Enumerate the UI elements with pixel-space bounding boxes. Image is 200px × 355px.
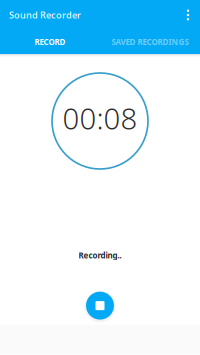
button[interactable]: Stop recording — [83, 289, 117, 323]
staticText: Recording.. — [78, 250, 121, 261]
button[interactable]: More options — [177, 0, 199, 30]
staticText: 00:08 — [62, 98, 137, 137]
button[interactable]: SAVED RECORDINGS — [100, 30, 200, 54]
staticText: RECORD — [34, 37, 65, 47]
button[interactable]: RECORD — [0, 30, 100, 54]
staticText: Sound Recorder — [9, 9, 81, 21]
staticText: SAVED RECORDINGS — [111, 37, 188, 47]
